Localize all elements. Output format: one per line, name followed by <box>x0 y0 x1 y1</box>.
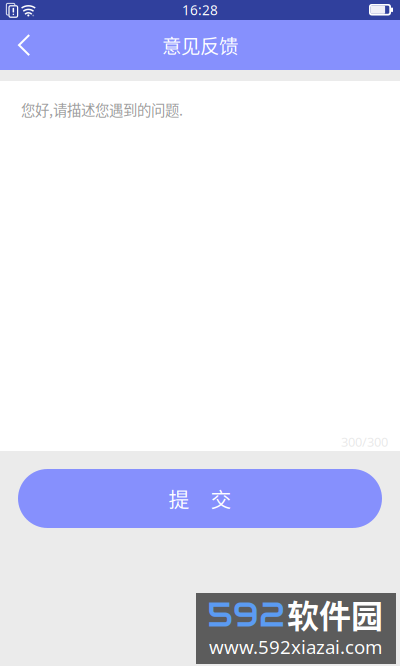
staticText: 意见反馈 <box>162 31 238 59</box>
staticText: 300/300 <box>341 433 388 450</box>
button[interactable]: Back <box>0 20 48 70</box>
staticText: www.592xiazai.com <box>209 634 382 659</box>
staticText: 16:28 <box>182 1 218 19</box>
staticText: 软件园 <box>287 591 383 637</box>
button[interactable]: Describe your problem <box>0 81 400 451</box>
staticText: 提 交 <box>168 483 231 513</box>
staticText: 592 <box>207 592 285 636</box>
button[interactable]: 提 交 <box>18 469 382 528</box>
staticText: 您好,请描述您遇到的问题. <box>21 99 183 120</box>
